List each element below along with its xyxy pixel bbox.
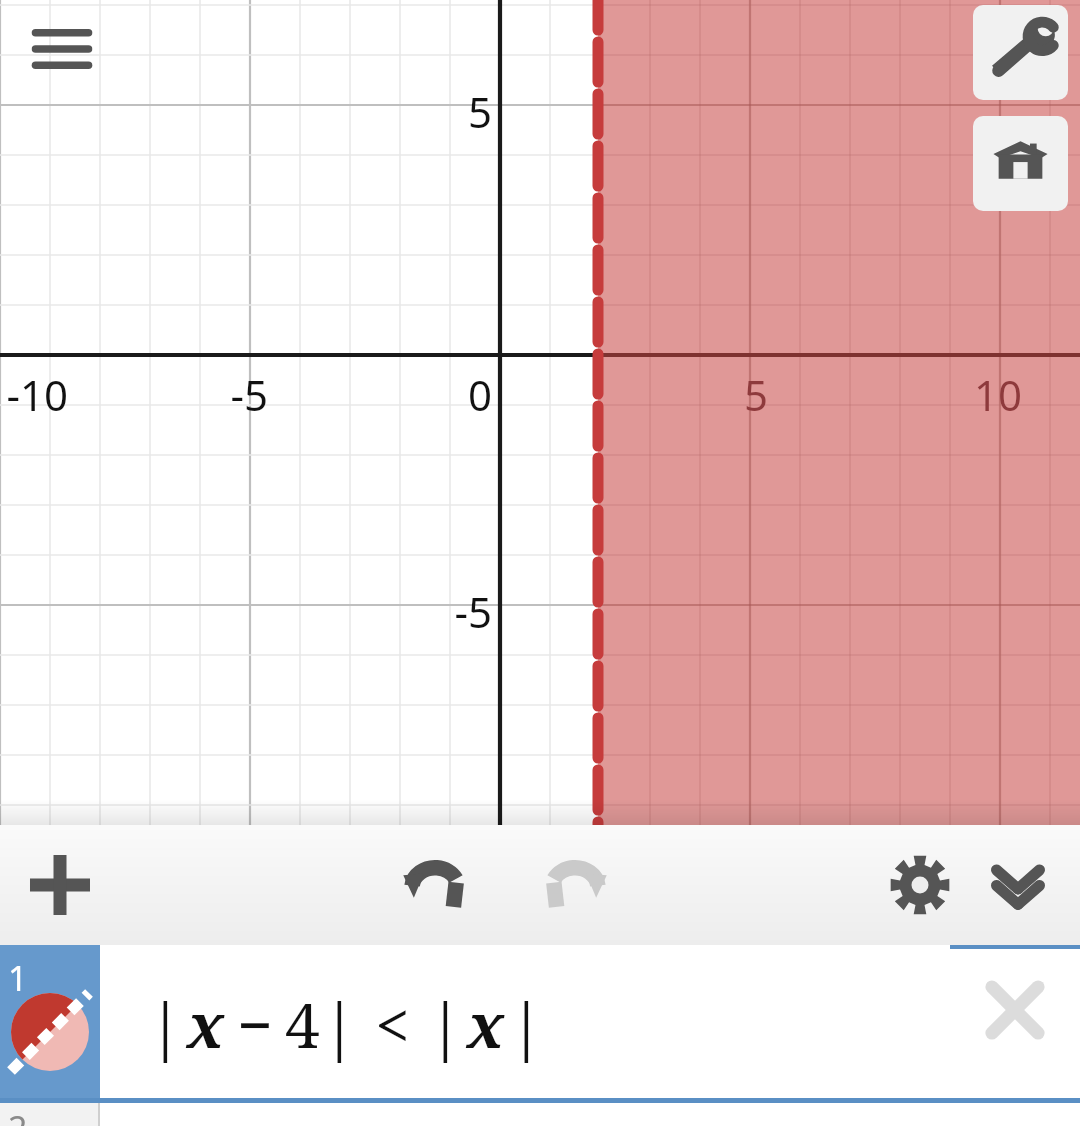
staticText: | xyxy=(148,982,183,1066)
staticText: 1 xyxy=(8,955,28,1001)
button[interactable]: 1 xyxy=(0,945,100,1103)
staticText: 5 xyxy=(618,366,768,423)
button[interactable]: Collapse xyxy=(968,835,1068,935)
button[interactable]: Delete expression xyxy=(950,945,1080,1103)
button[interactable]: Add expression xyxy=(10,835,110,935)
staticText: − xyxy=(237,982,273,1066)
button[interactable]: Redo xyxy=(525,835,625,935)
button[interactable]: Settings xyxy=(870,835,970,935)
staticText: | xyxy=(322,982,357,1066)
button[interactable]: Settings tools xyxy=(973,5,1068,100)
staticText: 2 xyxy=(8,1105,28,1126)
staticText: x xyxy=(467,982,505,1066)
button[interactable]: Undo xyxy=(385,835,485,935)
staticText: x xyxy=(187,982,225,1066)
staticText: -5 xyxy=(118,366,268,423)
staticText: 10 xyxy=(872,366,1022,423)
staticText: 4 xyxy=(285,982,320,1066)
button[interactable]: Home xyxy=(973,116,1068,211)
staticText: -10 xyxy=(0,366,68,423)
button[interactable]: Menu xyxy=(28,20,96,78)
staticText: 5 xyxy=(342,83,492,140)
staticText: < xyxy=(375,982,410,1066)
staticText: 0 xyxy=(342,366,492,423)
staticText: | xyxy=(428,982,463,1066)
button[interactable]: 2 xyxy=(0,1103,100,1126)
staticText: -5 xyxy=(342,583,492,640)
button[interactable]: | xyxy=(100,945,950,1103)
staticText: | xyxy=(509,982,544,1066)
